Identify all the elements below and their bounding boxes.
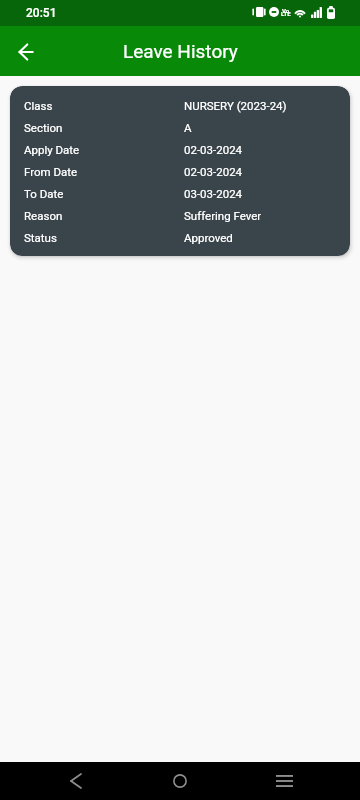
staticText: Section — [24, 121, 63, 134]
button[interactable]: Home — [160, 762, 200, 800]
staticText: Suffering Fever — [184, 209, 262, 222]
staticText: NURSERY (2023-24) — [184, 99, 287, 112]
button[interactable]: Back — [56, 762, 96, 800]
staticText: 03-03-2024 — [184, 187, 243, 200]
staticText: Apply Date — [24, 143, 80, 156]
staticText: Leave History — [123, 40, 238, 62]
button[interactable]: Back — [8, 33, 44, 69]
staticText: Approved — [184, 231, 233, 244]
button[interactable]: Recents — [264, 762, 304, 800]
staticText: A — [184, 121, 192, 134]
staticText: 02-03-2024 — [184, 143, 243, 156]
staticText: Status — [24, 231, 57, 244]
staticText: Reason — [24, 209, 63, 222]
staticText: Class — [24, 99, 53, 112]
button[interactable]: Class — [10, 86, 350, 256]
staticText: 02-03-2024 — [184, 165, 243, 178]
staticText: LTE — [281, 10, 291, 17]
staticText: To Date — [24, 187, 64, 200]
staticText: Vo — [282, 7, 290, 14]
staticText: 20:51 — [26, 6, 57, 20]
staticText: From Date — [24, 165, 78, 178]
